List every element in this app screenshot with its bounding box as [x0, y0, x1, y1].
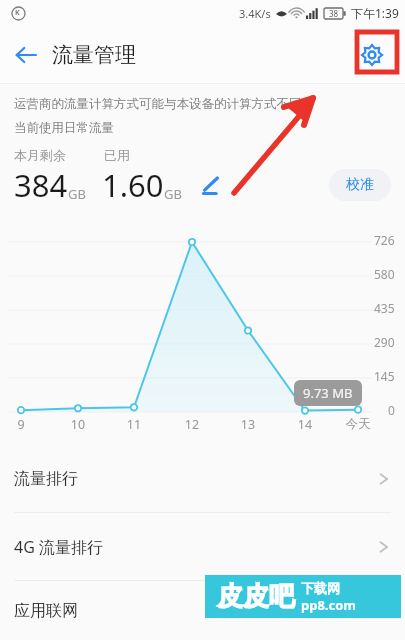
- staticText: 4G 流量排行: [14, 536, 103, 558]
- staticText: 今天: [344, 416, 372, 432]
- staticText: 10: [64, 416, 92, 433]
- staticText: 0: [388, 402, 395, 418]
- staticText: 下载网: [301, 580, 340, 596]
- button[interactable]: Settings: [345, 28, 399, 82]
- staticText: 435: [374, 300, 395, 316]
- staticText: 11: [120, 416, 148, 433]
- staticText: 9: [7, 416, 35, 433]
- staticText: pp8.com: [301, 596, 357, 614]
- staticText: GB: [164, 185, 182, 203]
- button[interactable]: Back: [0, 29, 52, 81]
- staticText: 9.73 MB: [303, 384, 353, 402]
- staticText: 本月剩余: [14, 147, 66, 163]
- staticText: 1.60: [102, 164, 164, 206]
- button[interactable]: Edit: [196, 170, 226, 200]
- staticText: 运营商的流量计算方式可能与本设备的计算方式不同: [14, 96, 302, 112]
- staticText: 290: [374, 334, 395, 350]
- staticText: 流量排行: [14, 469, 78, 489]
- button[interactable]: 流量排行: [0, 445, 405, 512]
- staticText: 校准: [346, 176, 374, 194]
- staticText: 726: [374, 232, 395, 248]
- button[interactable]: 校准: [329, 169, 391, 201]
- staticText: 13: [234, 416, 262, 433]
- button[interactable]: 应用联网: [0, 581, 405, 640]
- staticText: 当前使用日常流量: [14, 120, 114, 136]
- staticText: 应用联网: [14, 601, 78, 621]
- staticText: 12: [178, 416, 206, 433]
- staticText: K: [15, 8, 20, 18]
- staticText: 已用: [104, 147, 130, 163]
- staticText: 580: [374, 266, 395, 282]
- staticText: 38: [329, 8, 339, 19]
- staticText: GB: [68, 185, 86, 203]
- staticText: 下午1:39: [351, 5, 399, 21]
- staticText: 皮皮吧: [217, 580, 295, 613]
- button[interactable]: 4G 流量排行: [0, 513, 405, 580]
- staticText: 流量管理: [52, 42, 136, 68]
- staticText: 3.4K/s: [239, 6, 271, 21]
- staticText: 384: [14, 164, 68, 206]
- staticText: 145: [374, 368, 395, 384]
- staticText: 14: [291, 416, 319, 433]
